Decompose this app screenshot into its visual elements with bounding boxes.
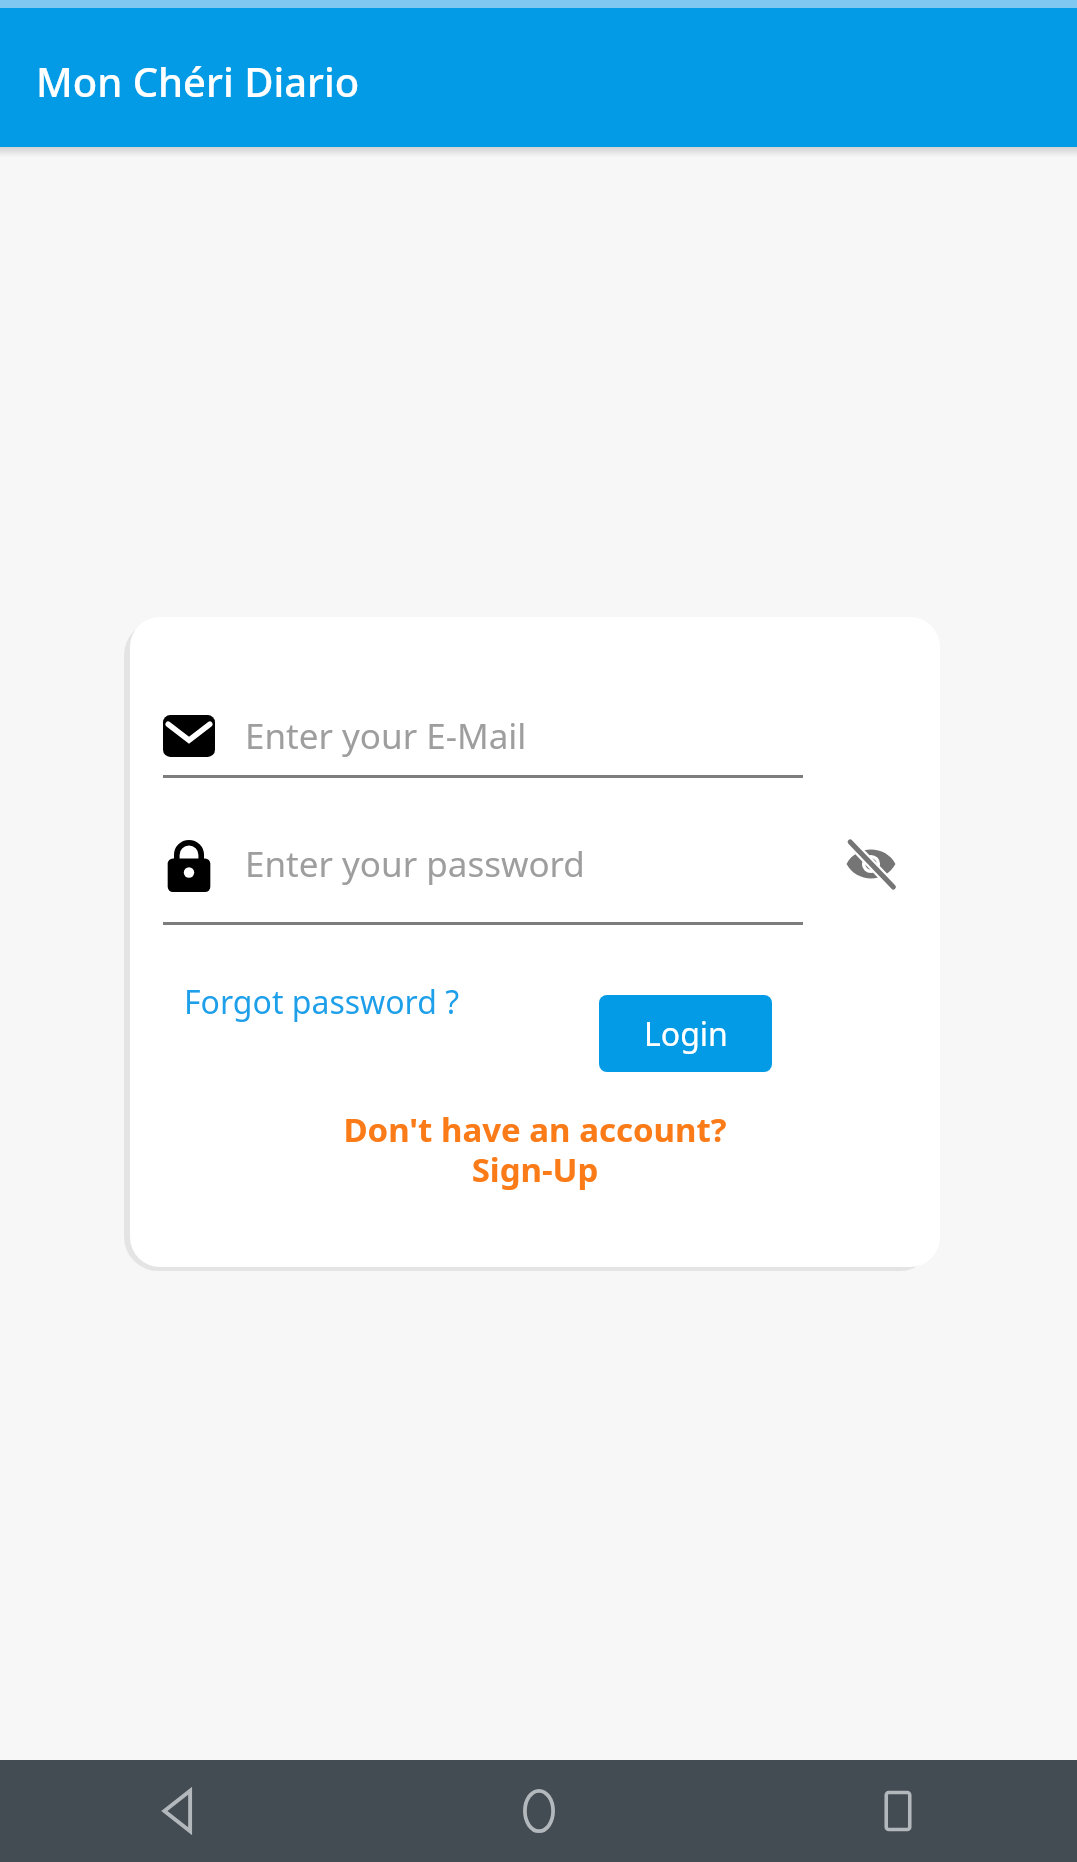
button[interactable]: Forgot password ?: [180, 972, 464, 1032]
button[interactable]: Show password: [839, 832, 903, 896]
staticText: Don't have an account? Sign-Up: [130, 1107, 940, 1192]
button[interactable]: Back: [0, 1760, 359, 1862]
staticText: Enter your E-Mail: [245, 712, 527, 760]
button[interactable]: Home: [359, 1760, 718, 1862]
button[interactable]: Recent apps: [718, 1760, 1077, 1862]
button[interactable]: Login: [599, 995, 772, 1072]
staticText: Forgot password ?: [184, 980, 460, 1024]
staticText: Enter your password: [245, 840, 585, 888]
button[interactable]: Don't have an account? Sign-Up: [130, 1107, 940, 1192]
staticText: Mon Chéri Diario: [36, 54, 360, 108]
staticText: Login: [644, 1012, 728, 1056]
